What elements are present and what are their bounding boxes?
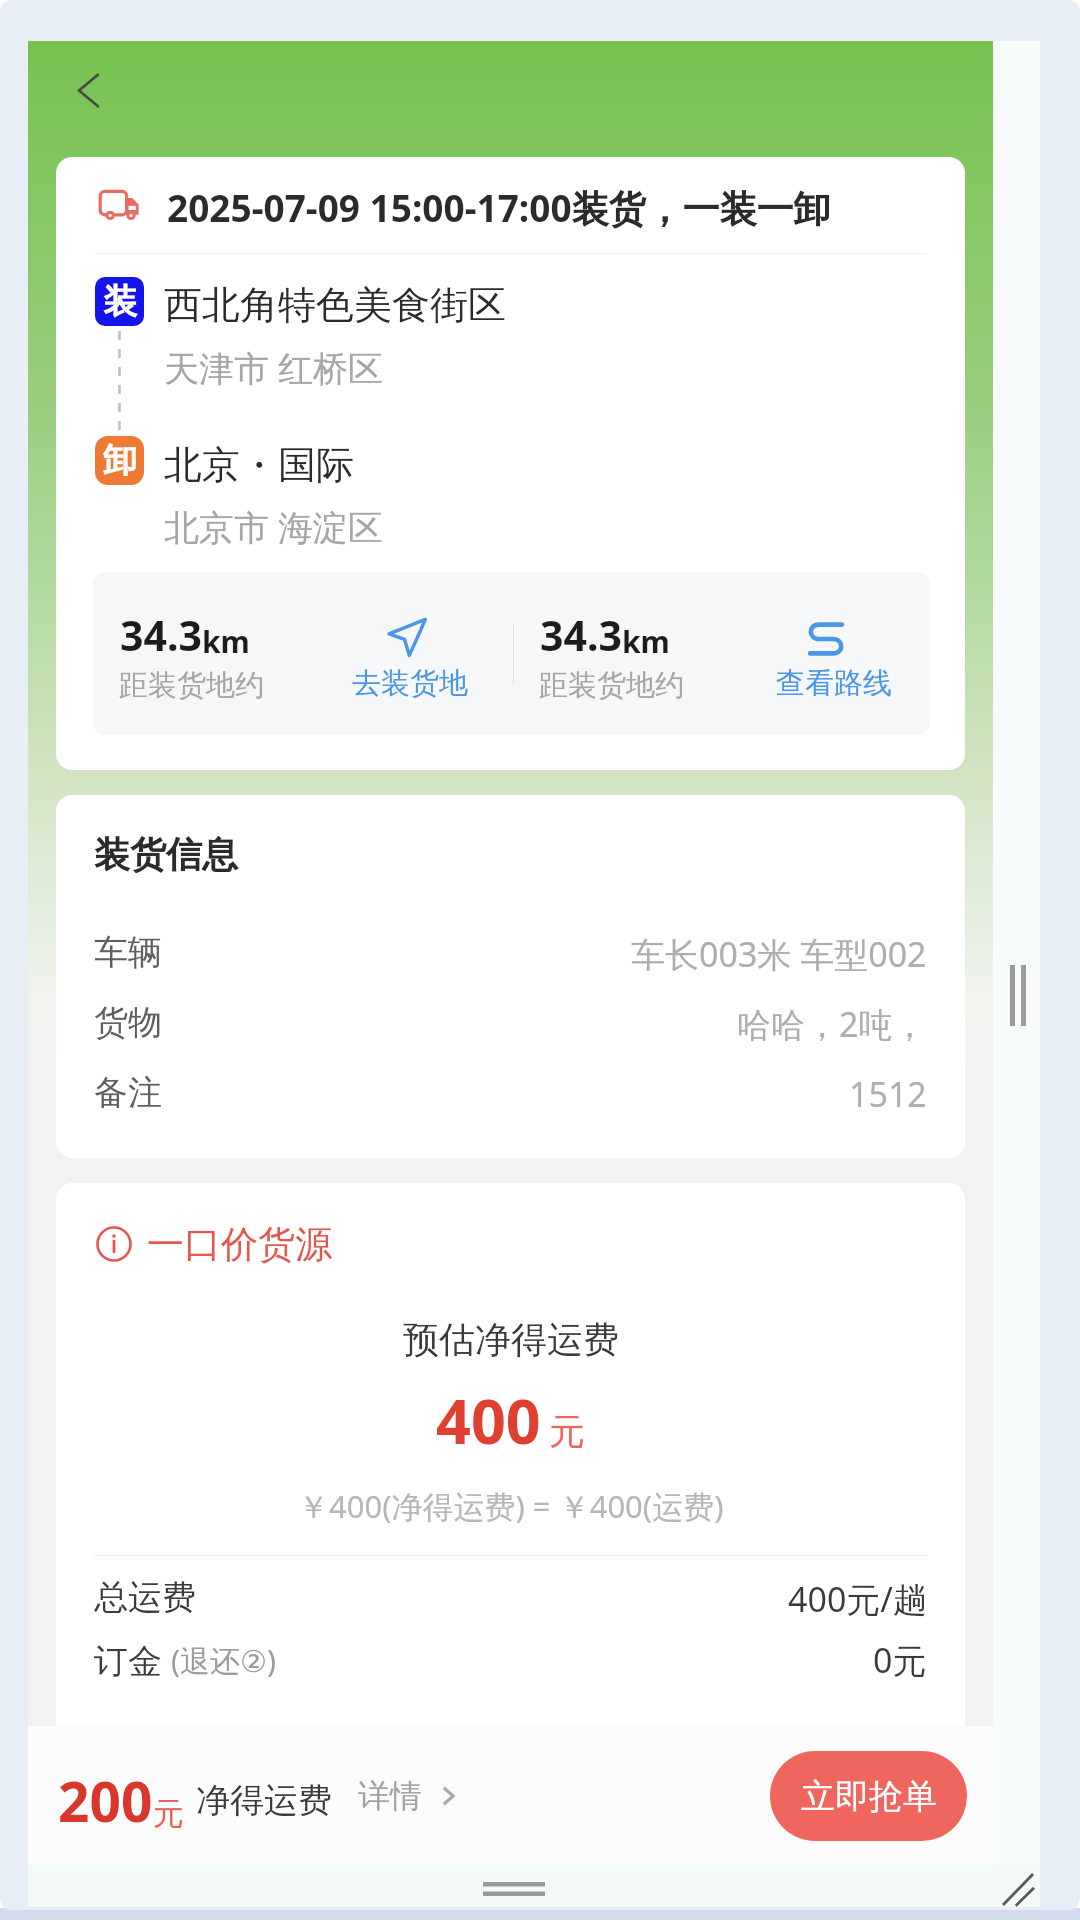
staticText: 距装货地约	[119, 667, 264, 704]
staticText: (退还②)	[171, 1640, 276, 1681]
button[interactable]: 立即抢单	[770, 1751, 967, 1841]
staticText: 北京・国际	[164, 441, 354, 489]
staticText: 备注	[94, 1071, 162, 1114]
button[interactable]: 查看路线	[772, 602, 930, 712]
staticText: 装货信息	[94, 832, 238, 877]
staticText: km	[622, 621, 670, 662]
staticText: 2025-07-09 15:00-17:00装货，一装一卸	[167, 182, 831, 233]
staticText: 卸	[103, 439, 137, 482]
staticText: 预估净得运费	[403, 1317, 619, 1362]
staticText: 车辆	[94, 931, 162, 974]
staticText: 北京市 海淀区	[164, 503, 384, 551]
staticText: 订金	[94, 1637, 171, 1683]
staticText: 400元/趟	[788, 1576, 927, 1622]
button[interactable]: 卸	[95, 431, 926, 568]
staticText: 去装货地	[352, 665, 468, 702]
staticText: 0元	[873, 1637, 927, 1683]
other: Truck	[99, 189, 139, 219]
staticText: 34.3	[540, 607, 622, 663]
staticText: 车长003米 车型002	[631, 931, 927, 977]
staticText: 34.3	[120, 607, 202, 663]
staticText: 200	[58, 1763, 153, 1838]
staticText: 元	[549, 1409, 585, 1454]
staticText: 西北角特色美食街区	[164, 281, 506, 329]
other: Resize	[1003, 1874, 1035, 1906]
button[interactable]: 装	[95, 272, 926, 417]
staticText: 一口价货源	[147, 1221, 332, 1268]
staticText: 400	[436, 1379, 541, 1462]
button[interactable]: 详情	[358, 1776, 462, 1816]
staticText: 哈哈，2吨，	[737, 1001, 927, 1047]
staticText: ￥400(净得运费) = ￥400(运费)	[298, 1485, 724, 1527]
button[interactable]: Back	[53, 55, 123, 125]
staticText: km	[202, 621, 250, 662]
staticText: 立即抢单	[801, 1775, 937, 1818]
staticText: 元	[153, 1794, 184, 1833]
staticText: 净得运费	[196, 1779, 332, 1822]
staticText: 货物	[94, 1001, 162, 1044]
staticText: 查看路线	[776, 665, 892, 702]
staticText: 详情	[358, 1776, 422, 1816]
staticText: 1512	[849, 1071, 927, 1117]
staticText: 总运费	[94, 1576, 196, 1619]
staticText: 天津市 红桥区	[164, 344, 384, 392]
button[interactable]: 去装货地	[348, 602, 508, 712]
staticText: 装	[103, 280, 137, 323]
staticText: 距装货地约	[539, 667, 684, 704]
